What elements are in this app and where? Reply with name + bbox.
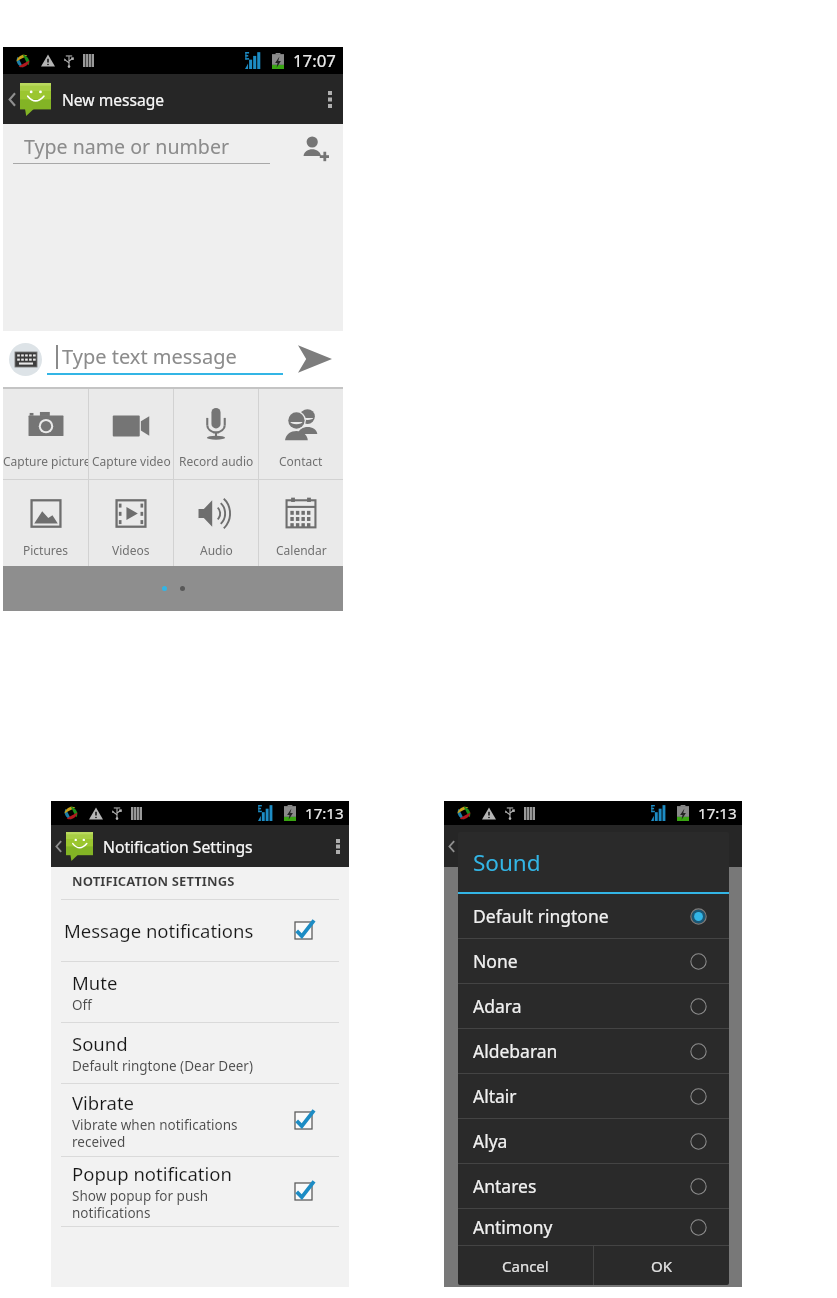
staticText: NOTIFICATION SETTINGS — [72, 872, 235, 890]
staticText: Message notifications — [64, 918, 254, 943]
staticText: Vibrate — [72, 1090, 135, 1115]
staticText: None — [473, 949, 690, 973]
staticText: Default ringtone (Dear Deer) — [72, 1057, 253, 1075]
staticText: 17:13 — [305, 803, 344, 824]
staticText: Altair — [473, 1084, 690, 1108]
staticText: Mute — [72, 970, 118, 995]
staticText: Antimony — [473, 1215, 690, 1239]
button[interactable]: More options — [326, 825, 349, 867]
staticText: Type name or number — [24, 133, 230, 160]
button[interactable]: Record audio — [174, 389, 258, 479]
staticText: Audio — [200, 542, 233, 558]
staticText: Sound — [72, 1031, 128, 1056]
button[interactable]: Keyboard — [9, 343, 42, 376]
staticText: Pictures — [23, 542, 69, 558]
button[interactable]: Capture picture — [3, 389, 88, 479]
button[interactable]: Adara — [458, 984, 729, 1028]
staticText: 17:13 — [698, 803, 737, 824]
staticText: New message — [62, 89, 165, 110]
button[interactable]: New message — [3, 74, 343, 124]
button[interactable]: Default ringtone — [458, 894, 729, 938]
button[interactable]: Alya — [458, 1119, 729, 1163]
staticText: Capture video — [92, 453, 171, 469]
button[interactable]: Add contact — [287, 124, 343, 172]
button[interactable]: Audio — [174, 480, 258, 566]
staticText: Capture picture — [3, 453, 88, 469]
button[interactable]: Send — [287, 331, 343, 387]
staticText: Notification Settings — [103, 836, 253, 857]
button[interactable]: Notification Settings — [51, 825, 349, 867]
button[interactable]: OK — [594, 1246, 729, 1285]
staticText: Show popup for push notifications — [72, 1187, 209, 1222]
staticText: Adara — [473, 994, 690, 1018]
staticText: Type text message — [62, 343, 237, 370]
button[interactable] — [444, 825, 742, 867]
button[interactable]: Capture video — [89, 389, 173, 479]
button[interactable]: Contact — [259, 389, 343, 479]
staticText: Aldebaran — [473, 1039, 690, 1063]
staticText: 17:07 — [293, 49, 336, 72]
staticText: Cancel — [502, 1256, 549, 1276]
staticText: Vibrate when notifications received — [72, 1116, 238, 1151]
button[interactable]: Aldebaran — [458, 1029, 729, 1073]
staticText: Record audio — [179, 453, 254, 469]
button[interactable]: Popup notification — [51, 1157, 349, 1226]
button[interactable]: Antimony — [458, 1209, 729, 1245]
staticText: Default ringtone — [473, 904, 690, 928]
staticText: Off — [72, 996, 92, 1014]
staticText: OK — [651, 1256, 673, 1276]
button[interactable]: None — [458, 939, 729, 983]
button[interactable]: More options — [317, 74, 343, 124]
button[interactable]: Videos — [89, 480, 173, 566]
button[interactable]: Antares — [458, 1164, 729, 1208]
button[interactable]: Sound — [51, 1023, 349, 1083]
button[interactable]: Pictures — [3, 480, 88, 566]
staticText: Calendar — [276, 542, 327, 558]
staticText: Contact — [279, 453, 323, 469]
staticText: Popup notification — [72, 1161, 232, 1186]
button[interactable]: Vibrate — [51, 1084, 349, 1156]
staticText: Sound — [473, 847, 541, 878]
staticText: Videos — [112, 542, 150, 558]
button[interactable]: Calendar — [259, 480, 343, 566]
button[interactable]: Mute — [51, 962, 349, 1022]
staticText: Antares — [473, 1174, 690, 1198]
button[interactable]: Message notifications — [51, 900, 349, 961]
button[interactable]: Altair — [458, 1074, 729, 1118]
staticText: Alya — [473, 1129, 690, 1153]
button[interactable]: Cancel — [458, 1246, 593, 1285]
